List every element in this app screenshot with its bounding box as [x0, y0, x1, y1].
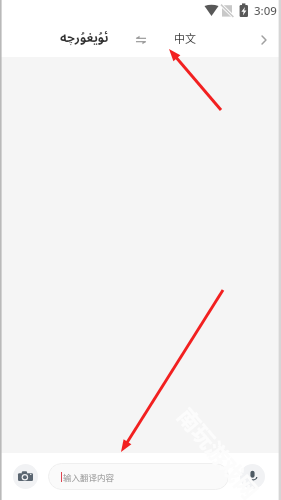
staticText: ئۇيغۇرچە — [60, 29, 109, 46]
button[interactable]: More languages — [247, 22, 281, 57]
button[interactable]: 中文 — [160, 20, 210, 55]
staticText: 中文 — [174, 30, 196, 46]
button[interactable]: Camera translate — [13, 464, 38, 489]
button[interactable]: Swap languages — [127, 22, 155, 57]
button[interactable]: ئۇيغۇرچە — [44, 20, 124, 55]
staticText: 输入翻译内容 — [63, 471, 115, 483]
staticText: 3:09 — [254, 3, 277, 19]
button[interactable]: Voice input — [240, 464, 265, 489]
button[interactable]: 输入翻译内容 — [48, 463, 229, 490]
